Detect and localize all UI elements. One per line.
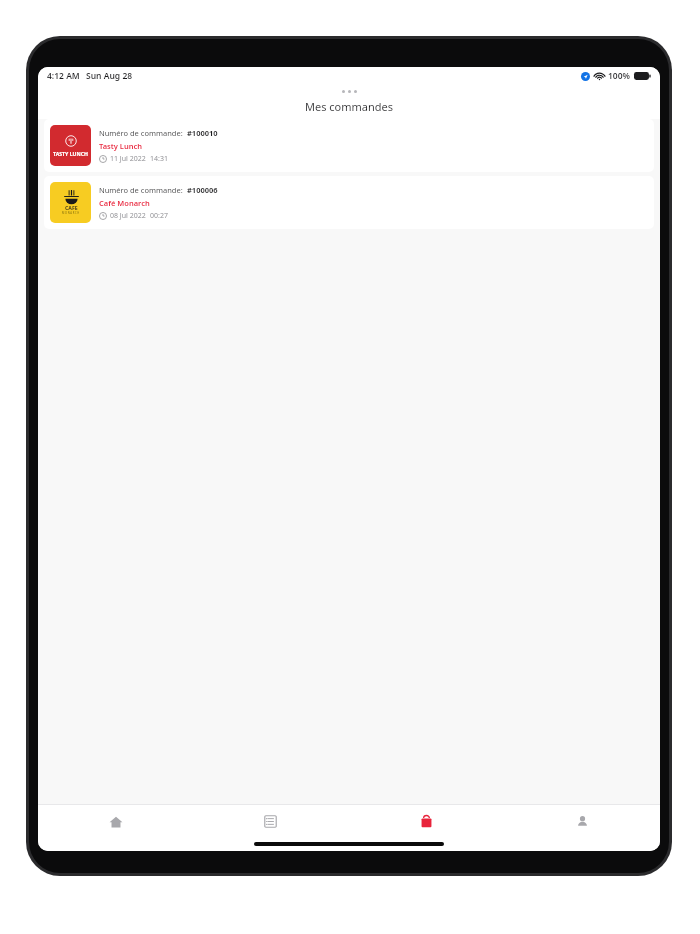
staticText: Café Monarch <box>99 198 150 208</box>
staticText: 4:12 AM <box>47 70 80 82</box>
button[interactable]: Profile <box>504 805 660 838</box>
staticText: #100010 <box>187 128 218 138</box>
staticText: Numéro de commande: <box>99 185 183 195</box>
staticText: Numéro de commande: <box>99 128 183 138</box>
staticText: Mes commandes <box>305 99 394 114</box>
button[interactable]: Multitasking options <box>336 87 363 96</box>
staticText: TASTY LUNCH <box>53 150 88 157</box>
button[interactable]: TASTY LUNCH <box>44 119 654 172</box>
button[interactable]: Menu <box>193 805 348 838</box>
staticText: 11 Jul 2022 <box>110 154 146 164</box>
button[interactable]: Home <box>38 805 193 838</box>
staticText: 00:27 <box>150 211 168 221</box>
staticText: 08 Jul 2022 <box>110 211 146 221</box>
button[interactable]: CAFE <box>44 176 654 229</box>
staticText: 14:31 <box>150 154 168 164</box>
staticText: Sun Aug 28 <box>86 70 133 82</box>
staticText: CAFE <box>65 204 78 211</box>
button[interactable]: Orders <box>348 805 504 838</box>
staticText: 100% <box>608 70 631 82</box>
staticText: Tasty Lunch <box>99 141 143 151</box>
staticText: #100006 <box>187 185 218 195</box>
staticText: M O N A R C H <box>62 211 80 215</box>
